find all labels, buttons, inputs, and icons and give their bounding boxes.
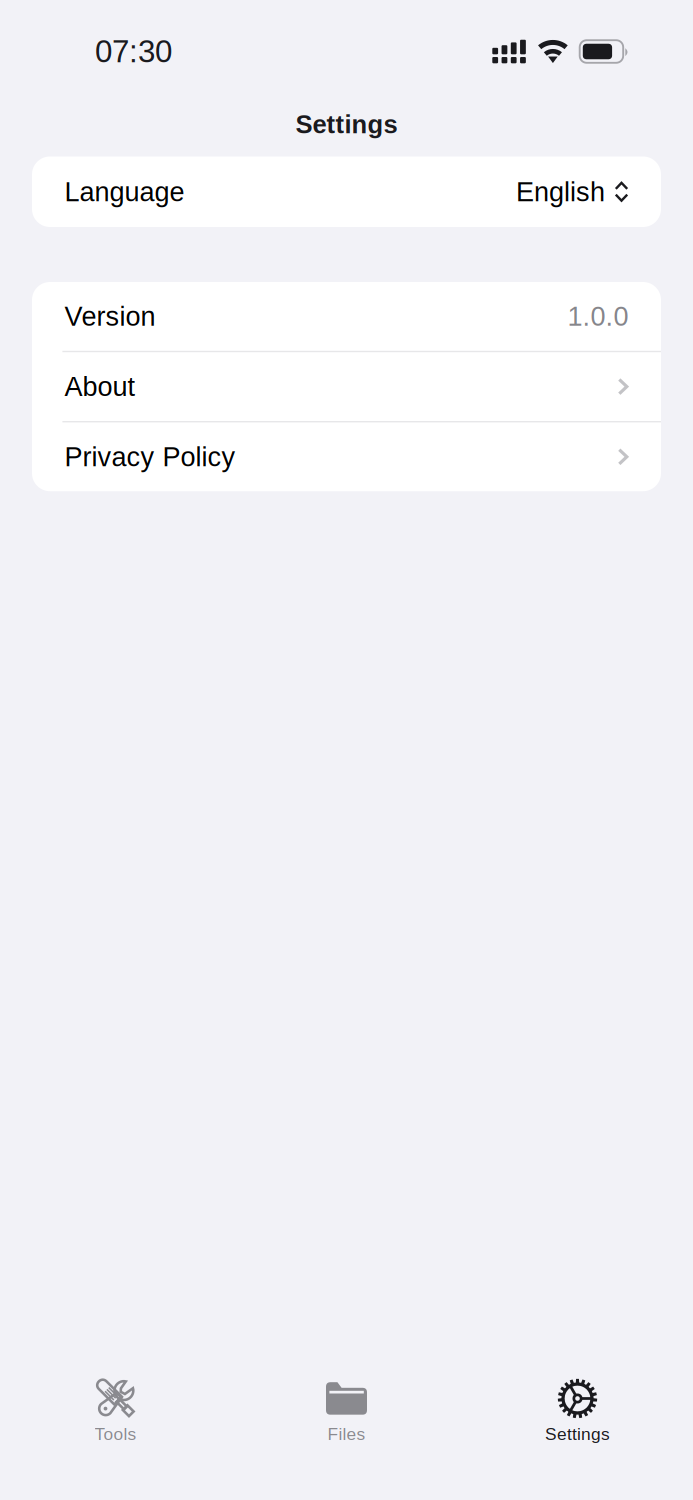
staticText: About bbox=[64, 371, 135, 402]
staticText: Language bbox=[64, 177, 184, 207]
staticText: 1.0.0 bbox=[567, 301, 628, 331]
staticText: 07:30 bbox=[95, 34, 172, 69]
button[interactable]: Language bbox=[32, 156, 661, 227]
staticText: Settings bbox=[295, 110, 397, 139]
staticText: Tools bbox=[94, 1424, 136, 1444]
button[interactable]: Settings bbox=[462, 1376, 693, 1442]
button[interactable]: Tools bbox=[0, 1376, 231, 1442]
staticText: Settings bbox=[545, 1424, 610, 1444]
button[interactable]: Privacy Policy bbox=[32, 422, 661, 491]
staticText: Privacy Policy bbox=[64, 442, 235, 472]
staticText: Version bbox=[64, 301, 155, 331]
button[interactable]: Files bbox=[231, 1376, 462, 1442]
button[interactable]: About bbox=[32, 352, 661, 421]
staticText: English bbox=[516, 177, 605, 207]
staticText: Files bbox=[327, 1424, 365, 1444]
